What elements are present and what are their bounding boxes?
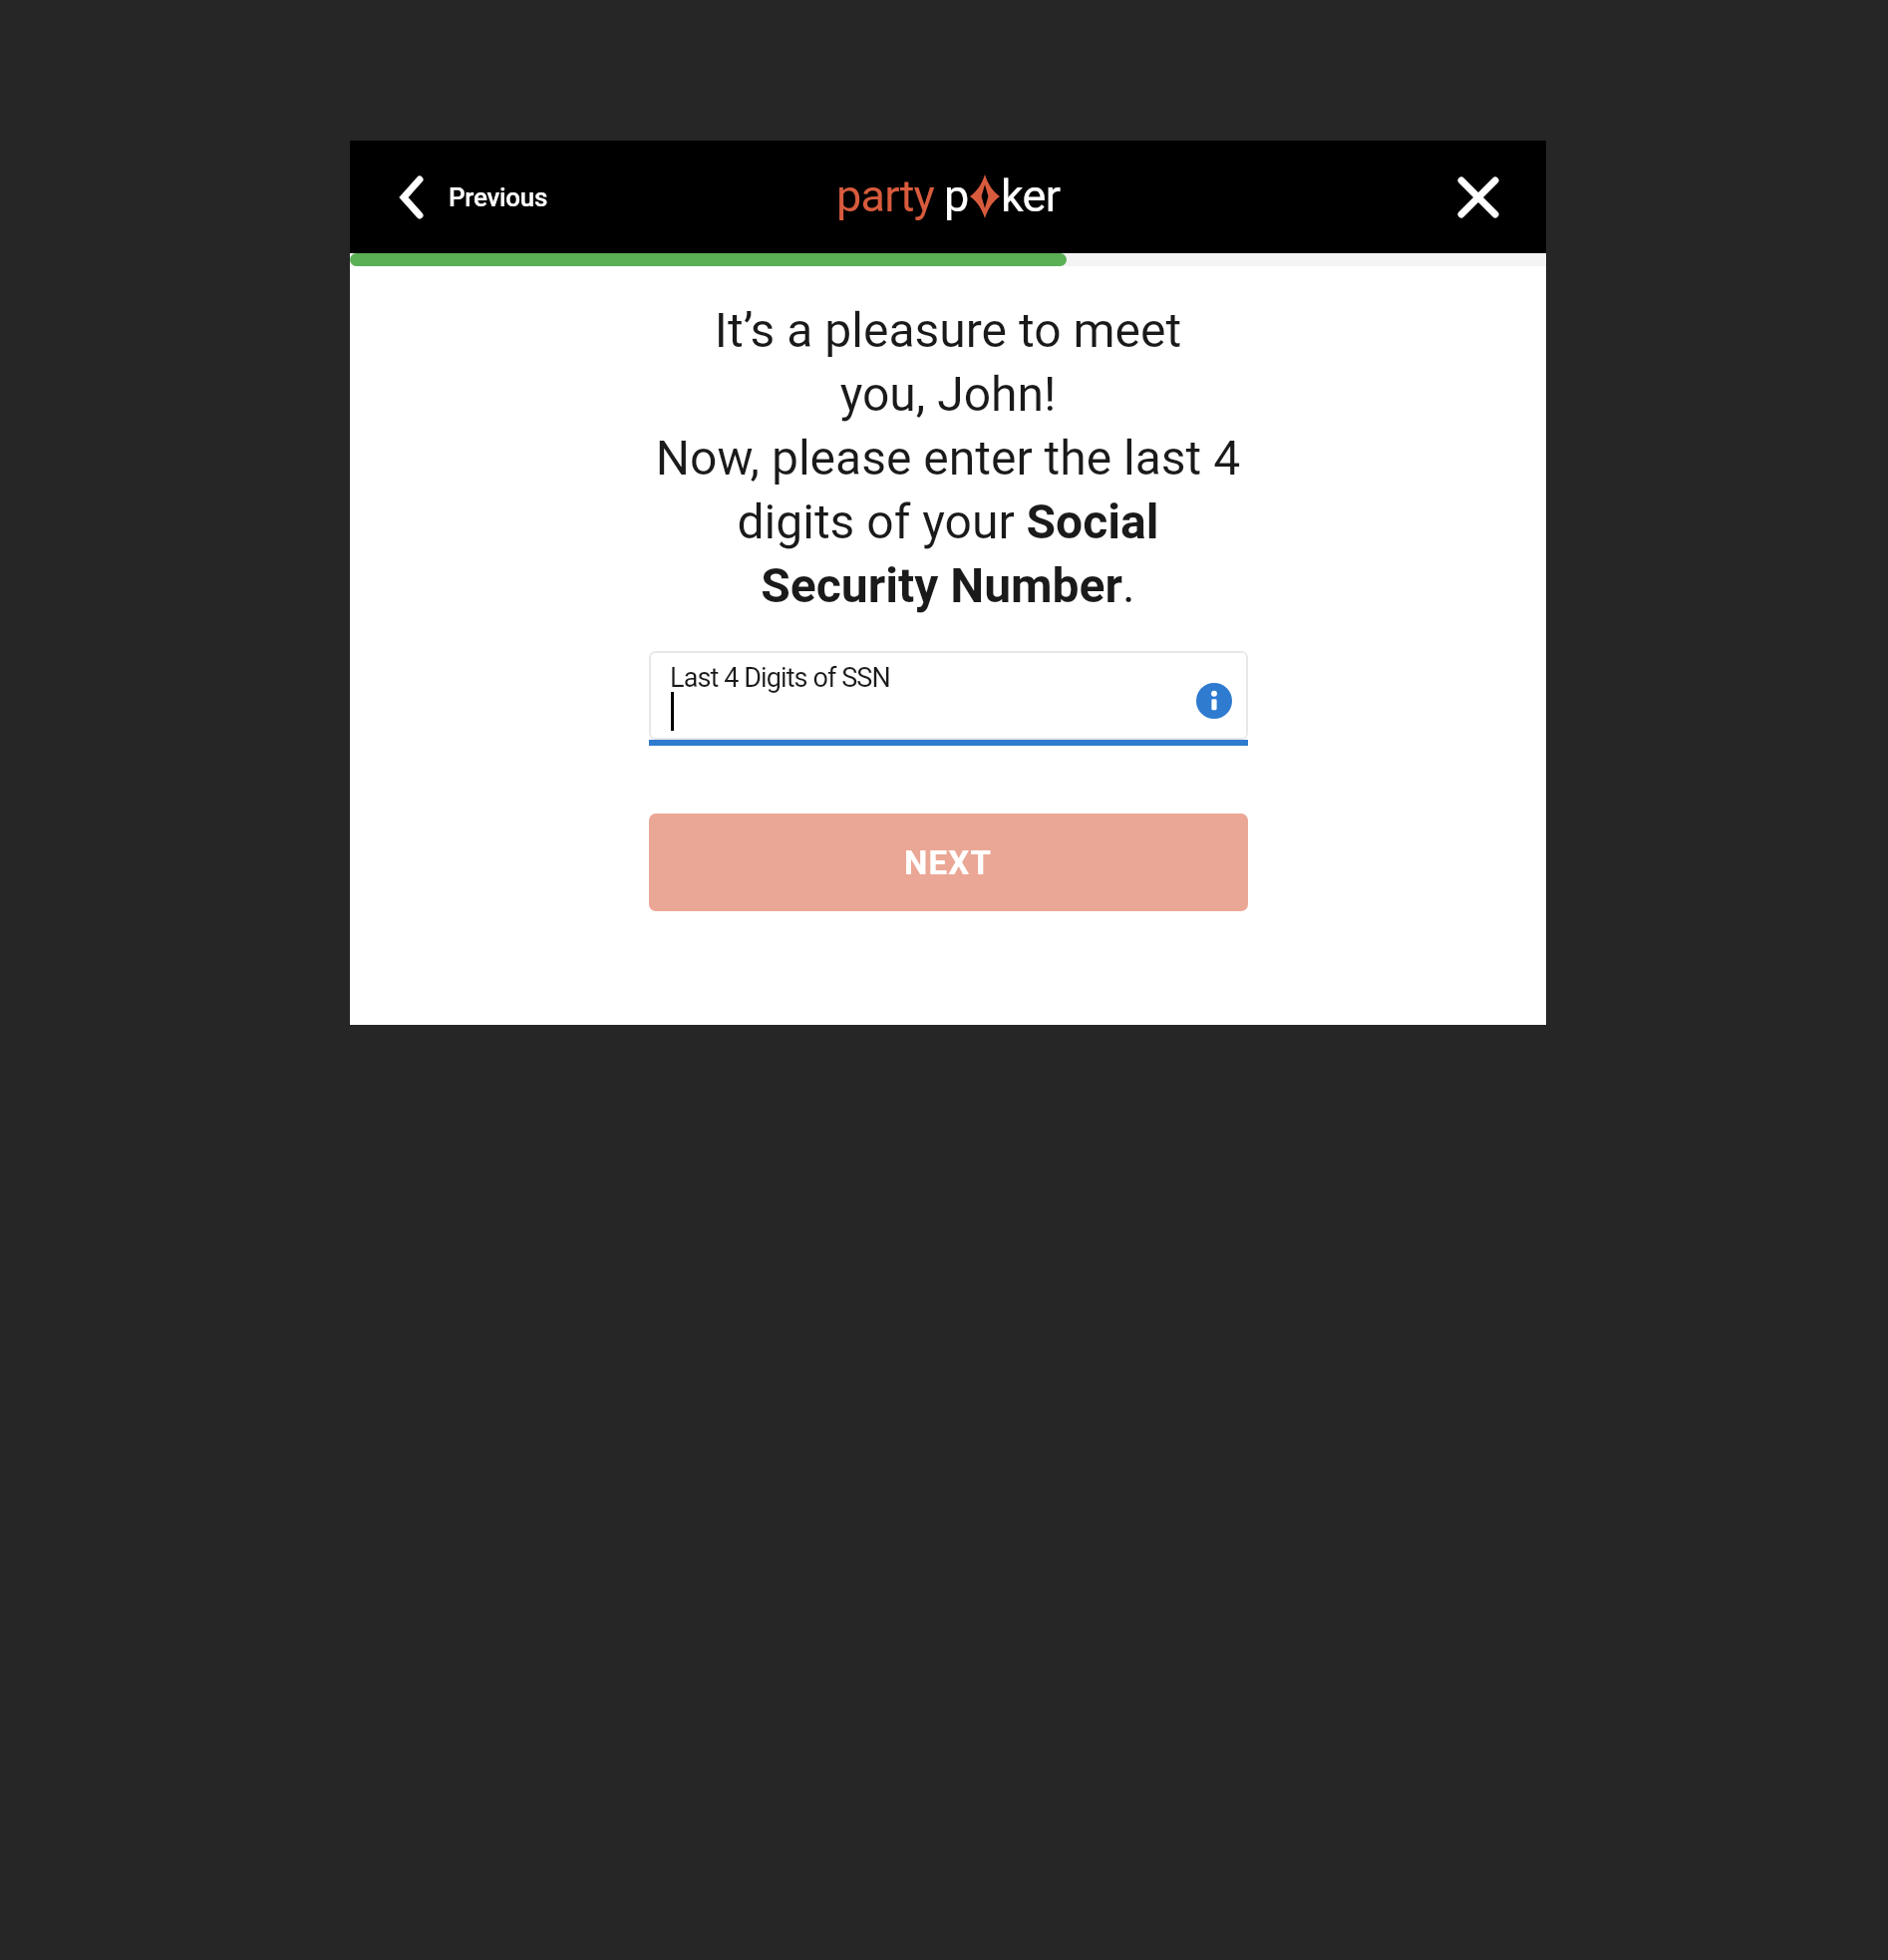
button[interactable]: Information	[1196, 683, 1232, 719]
staticText: p	[944, 169, 969, 222]
staticText: ker	[1001, 169, 1061, 222]
button[interactable]: Close	[1446, 165, 1510, 229]
staticText: Last 4 Digits of SSN	[670, 662, 890, 694]
staticText: It’s a pleasure to meet you, John! Now, …	[599, 302, 1297, 613]
button[interactable]: Previous	[400, 141, 548, 253]
button[interactable]: Last 4 Digits of SSN	[649, 651, 1248, 746]
staticText: Previous	[449, 182, 548, 212]
staticText: NEXT	[904, 843, 993, 882]
staticText: party	[836, 169, 935, 222]
button[interactable]: NEXT	[649, 814, 1248, 911]
